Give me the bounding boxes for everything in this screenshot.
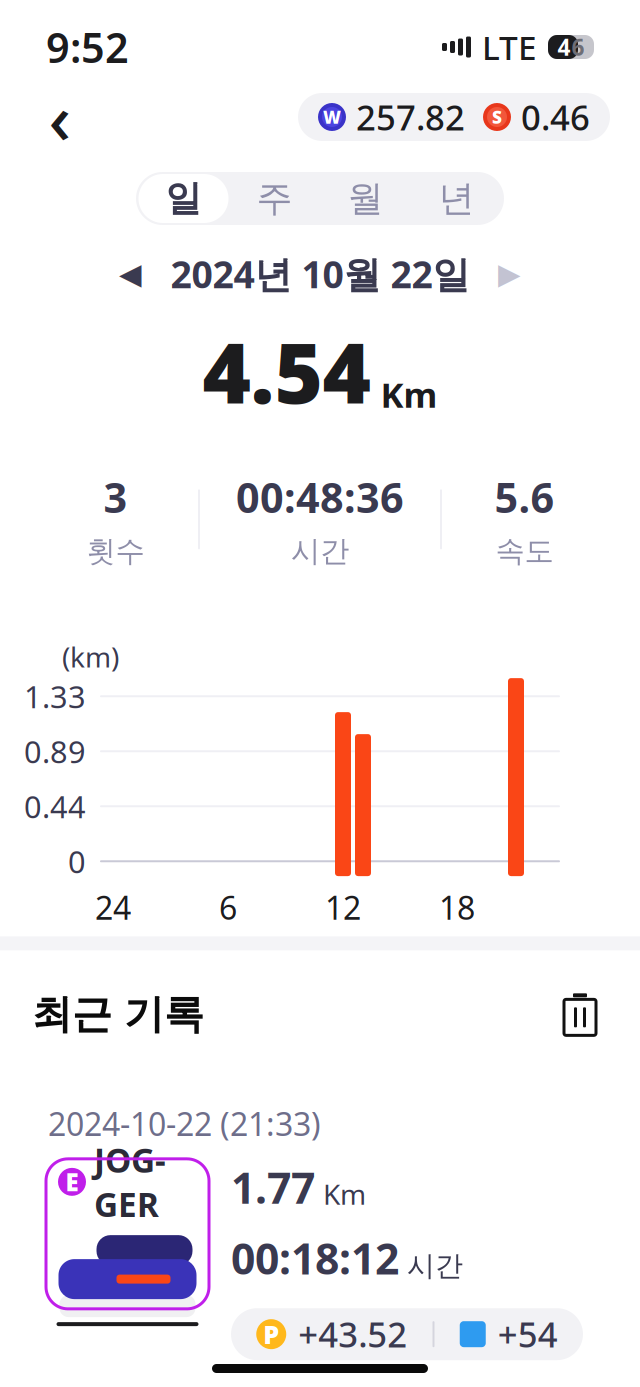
button[interactable]: 2024-10-22 (21:33) — [32, 1082, 608, 1314]
staticText: Km — [380, 371, 437, 417]
staticText: 일 — [165, 176, 201, 221]
button[interactable]: W — [298, 93, 610, 141]
staticText: 00:18:12 — [231, 1229, 399, 1286]
staticText: 24 — [95, 886, 131, 929]
staticText: Km — [323, 1175, 366, 1212]
staticText: JOGGER — [94, 1138, 166, 1226]
staticText: 9:52 — [46, 20, 129, 74]
staticText: +54 — [498, 1311, 558, 1357]
staticText: 횟수 — [86, 533, 144, 569]
staticText: +43.52 — [298, 1311, 407, 1357]
staticText: 1.33 — [24, 676, 86, 717]
button[interactable]: 년 — [411, 174, 502, 223]
staticText: LTE — [482, 25, 537, 69]
button[interactable]: Next day — [483, 252, 535, 296]
staticText: 시간 — [407, 1249, 463, 1283]
staticText: ◀ — [119, 257, 142, 290]
staticText: 년 — [438, 176, 474, 221]
staticText: 6 — [219, 886, 237, 929]
staticText: 0.46 — [521, 94, 590, 140]
staticText: 18 — [439, 886, 475, 929]
staticText: 257.82 — [356, 94, 465, 140]
button[interactable]: 월 — [320, 174, 411, 223]
staticText: 5.6 — [494, 469, 554, 524]
staticText: 시간 — [291, 533, 349, 569]
button[interactable]: 주 — [229, 174, 320, 223]
staticText: 속도 — [495, 533, 553, 569]
staticText: 4 — [557, 32, 570, 62]
staticText: 2024-10-22 (21:33) — [48, 1102, 321, 1145]
staticText: 0.89 — [24, 731, 86, 772]
button[interactable]: Back — [30, 89, 90, 145]
staticText: 12 — [325, 886, 361, 929]
staticText: E — [65, 1166, 78, 1198]
staticText: ‹ — [48, 71, 71, 163]
staticText: 0.44 — [24, 786, 86, 827]
staticText: 0 — [68, 841, 86, 882]
staticText: W — [323, 105, 341, 128]
staticText: S — [492, 105, 502, 128]
staticText: P — [263, 1317, 279, 1351]
staticText: 4.54 — [202, 317, 370, 426]
button[interactable]: 일 — [138, 174, 229, 223]
staticText: 주 — [256, 176, 292, 221]
staticText: ▶ — [498, 257, 521, 290]
button[interactable]: Delete records — [552, 986, 608, 1042]
button[interactable]: Previous day — [104, 252, 156, 296]
staticText: (km) — [62, 638, 119, 675]
staticText: 3 — [103, 469, 127, 524]
staticText: 월 — [347, 176, 383, 221]
staticText: 2024년 10월 22일 — [170, 249, 469, 299]
staticText: 00:48:36 — [236, 469, 404, 524]
staticText: 6 — [571, 32, 584, 62]
staticText: 최근 기록 — [32, 990, 204, 1039]
staticText: 1.77 — [231, 1159, 315, 1216]
